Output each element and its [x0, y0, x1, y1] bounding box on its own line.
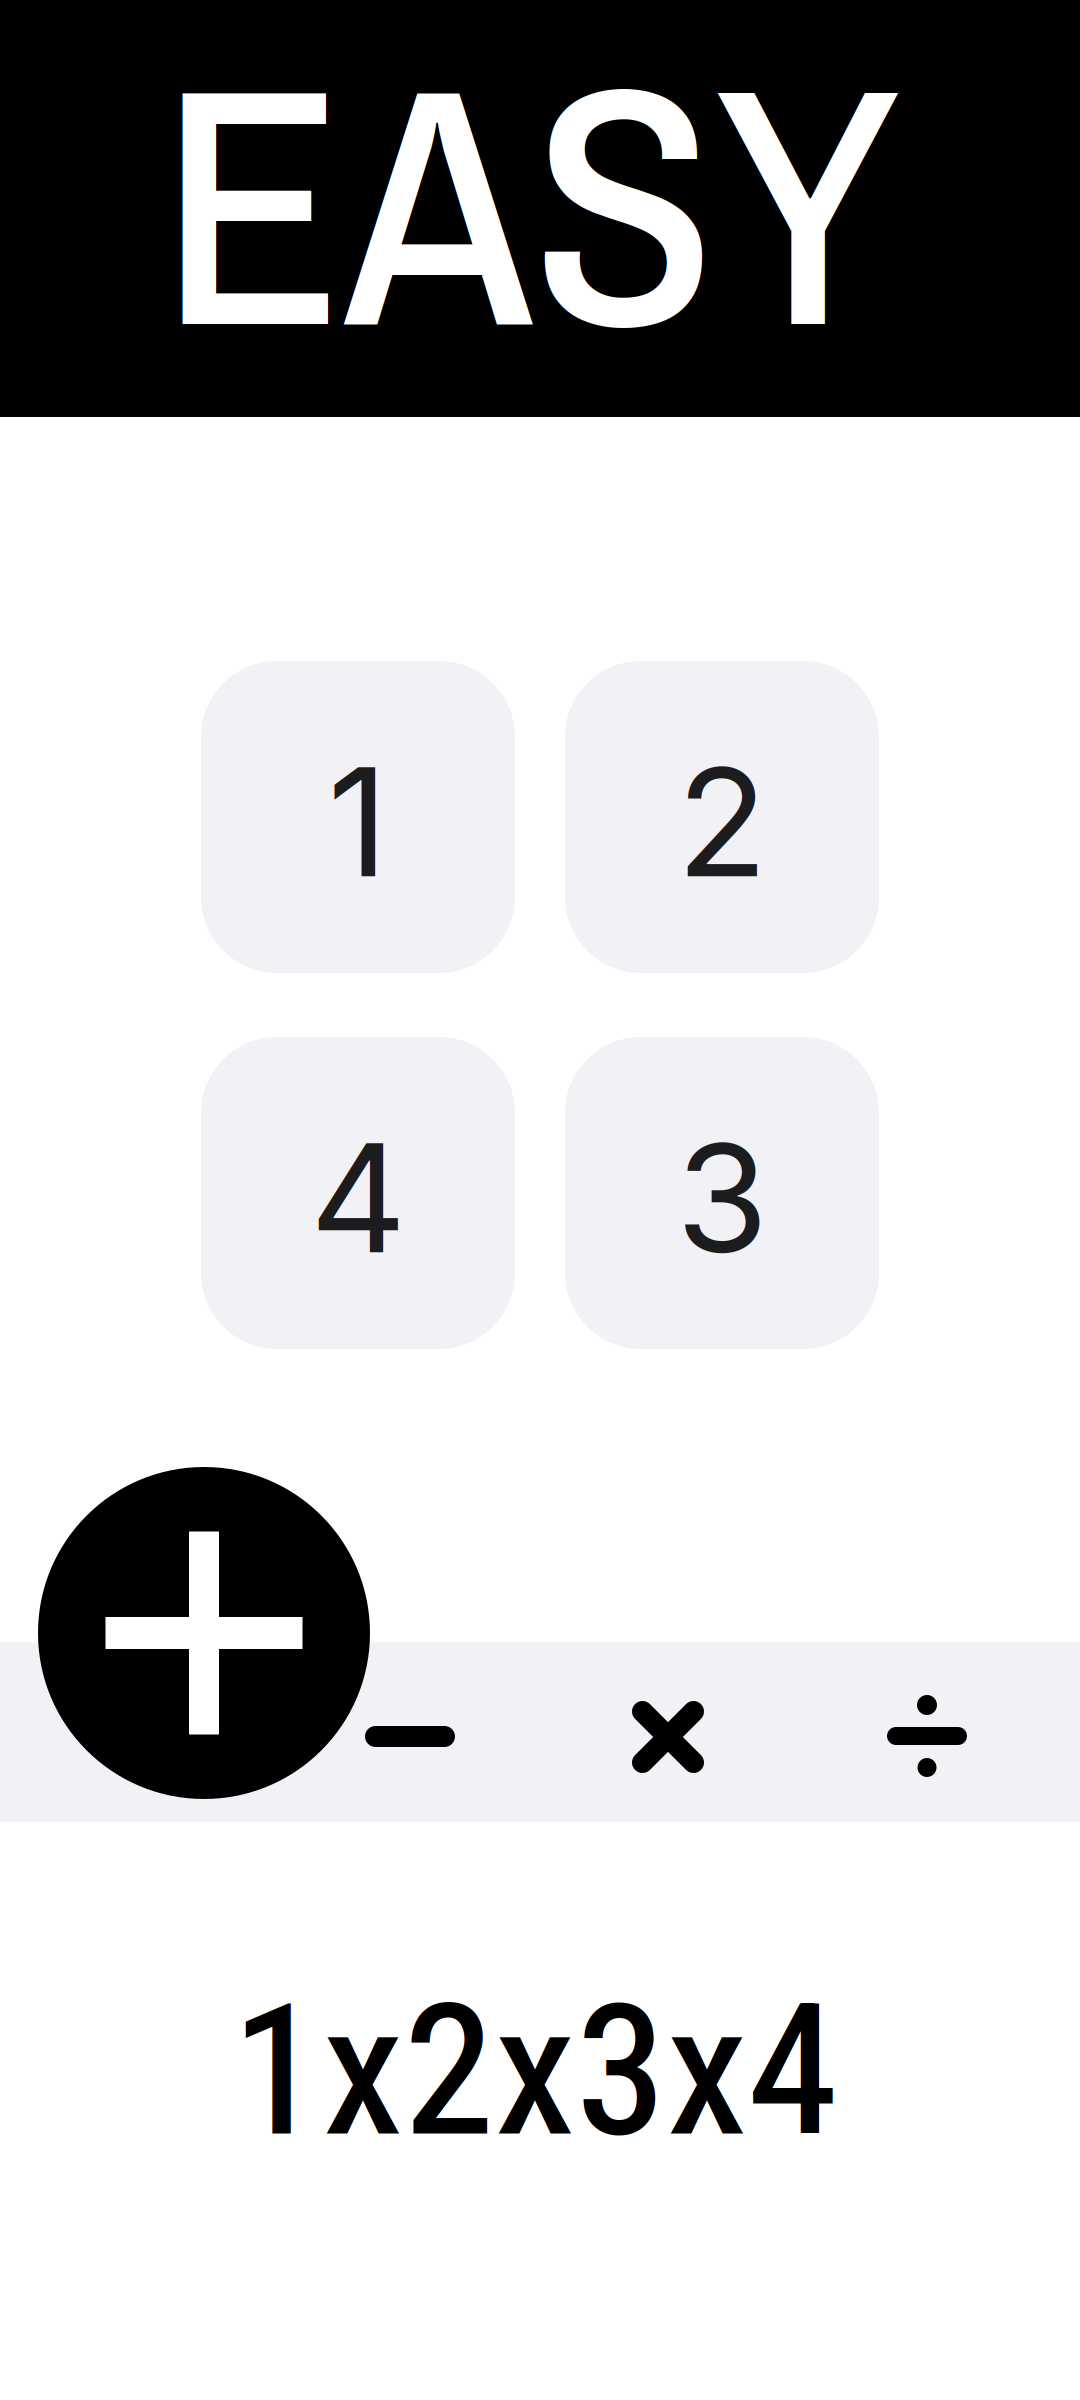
button[interactable]: Add — [38, 1467, 370, 1799]
staticText: EASY — [160, 0, 900, 429]
button[interactable]: 3 — [565, 1037, 879, 1349]
staticText: 2 — [676, 732, 767, 912]
button[interactable]: 2 — [565, 661, 879, 973]
button[interactable]: Multiply — [635, 1642, 707, 1822]
staticText: 1 — [327, 732, 388, 912]
button[interactable]: Subtract — [365, 1642, 455, 1822]
staticText: 1x2x3x4 — [231, 1964, 838, 2178]
staticText: 3 — [676, 1108, 768, 1288]
button[interactable]: Divide — [887, 1642, 967, 1822]
button[interactable]: 1 — [201, 661, 515, 973]
staticText: 4 — [310, 1108, 406, 1288]
button[interactable]: 4 — [201, 1037, 515, 1349]
